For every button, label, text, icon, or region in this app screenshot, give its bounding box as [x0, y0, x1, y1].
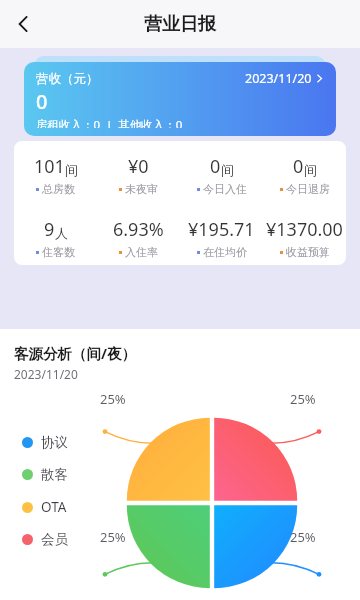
button[interactable]: 0: [180, 154, 263, 196]
button[interactable]: ¥195.71: [180, 217, 263, 259]
staticText: 未夜审: [125, 182, 158, 196]
button[interactable]: 6.93%: [97, 217, 180, 259]
button[interactable]: 101: [14, 154, 97, 196]
staticText: 间: [65, 162, 78, 178]
button[interactable]: 协议: [22, 434, 68, 451]
staticText: 人: [55, 225, 68, 241]
staticText: ¥1370.00: [266, 217, 343, 242]
staticText: ¥195.71: [188, 217, 255, 242]
staticText: 会员: [41, 531, 68, 548]
button[interactable]: Back: [0, 0, 48, 48]
staticText: 0: [36, 88, 48, 115]
staticText: ¥0: [128, 154, 149, 179]
staticText: 间: [304, 162, 317, 178]
staticText: 101: [34, 154, 65, 179]
staticText: 25%: [100, 528, 126, 546]
staticText: 散客: [41, 466, 68, 483]
staticText: 收益预算: [286, 245, 330, 259]
staticText: 入住率: [125, 245, 158, 259]
button[interactable]: 营收（元）: [24, 62, 336, 136]
button[interactable]: 散客: [22, 466, 68, 483]
staticText: 间: [221, 162, 234, 178]
staticText: 营收（元）: [36, 71, 99, 87]
staticText: 2023/11/20: [14, 366, 78, 382]
button[interactable]: 9: [14, 217, 97, 259]
staticText: 今日入住: [203, 182, 247, 196]
staticText: 25%: [290, 528, 316, 546]
staticText: 客源分析（间/夜）: [14, 343, 137, 363]
button[interactable]: OTA: [22, 498, 67, 516]
staticText: OTA: [41, 498, 67, 516]
staticText: 25%: [100, 390, 126, 408]
button[interactable]: 会员: [22, 531, 68, 548]
staticText: 25%: [290, 390, 316, 408]
staticText: 在住均价: [203, 245, 247, 259]
staticText: 房租收入：0 | 其他收入：0: [36, 117, 183, 128]
staticText: 2023/11/20: [245, 70, 312, 87]
button[interactable]: 0: [263, 154, 346, 196]
staticText: 0: [210, 154, 221, 179]
button[interactable]: ¥1370.00: [263, 217, 346, 259]
staticText: 今日退房: [286, 182, 330, 196]
staticText: 协议: [41, 434, 68, 451]
staticText: 总房数: [42, 182, 75, 196]
staticText: 6.93%: [113, 217, 164, 242]
staticText: 0: [293, 154, 304, 179]
staticText: 住客数: [42, 245, 75, 259]
button[interactable]: ¥0: [97, 154, 180, 196]
staticText: 营业日报: [144, 13, 216, 36]
staticText: 9: [44, 217, 55, 242]
